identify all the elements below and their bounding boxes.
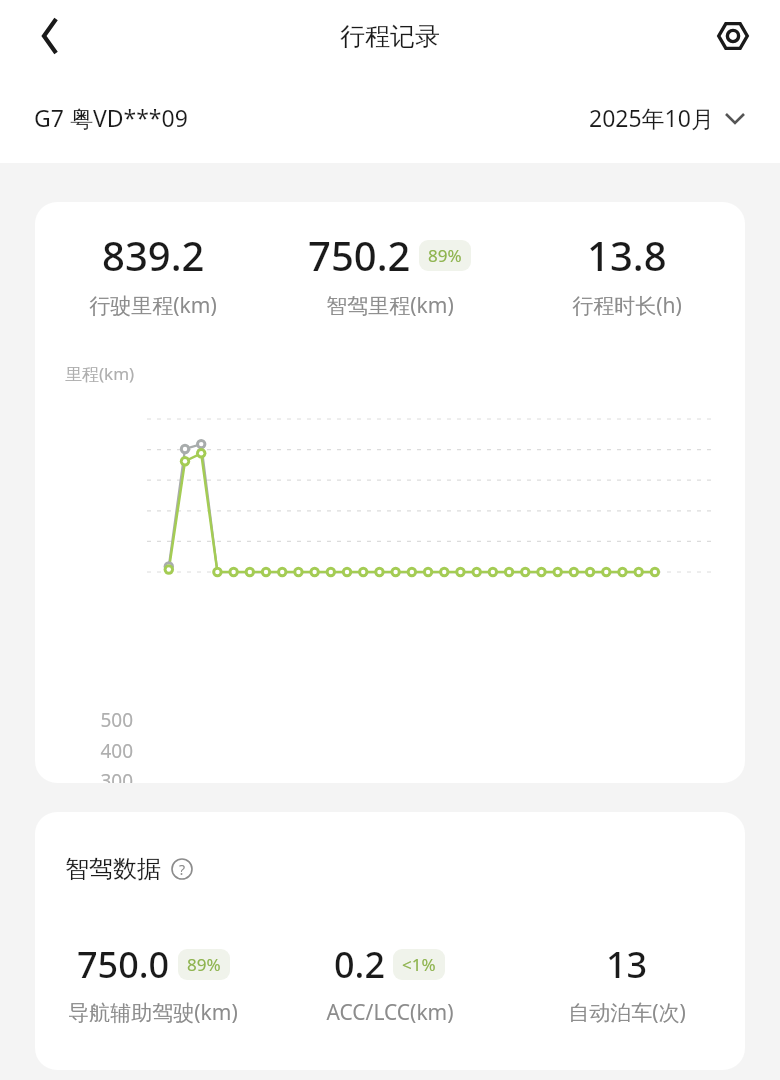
staticText: 500	[75, 707, 133, 733]
staticText: 0.2	[334, 940, 385, 989]
staticText: 400	[75, 738, 133, 764]
button[interactable]: 750.2	[271, 228, 508, 320]
staticText: 导航辅助驾驶(km)	[68, 998, 238, 1027]
staticText: 智驾里程(km)	[326, 291, 454, 320]
button[interactable]: 13.8	[508, 228, 745, 320]
button[interactable]: Settings	[710, 13, 756, 59]
button[interactable]: 750.0	[35, 940, 271, 1027]
staticText: ACC/LCC(km)	[326, 998, 454, 1027]
button[interactable]: 2025年10月	[589, 96, 746, 139]
staticText: 智驾数据	[65, 854, 161, 884]
staticText: 750.0	[77, 940, 170, 989]
staticText: 里程(km)	[65, 362, 135, 385]
staticText: 89%	[187, 953, 221, 976]
button[interactable]: 0.2	[271, 940, 508, 1027]
staticText: 2025年10月	[589, 102, 714, 133]
button[interactable]: 13	[508, 940, 745, 1027]
staticText: <1%	[402, 953, 436, 976]
staticText: 行程时长(h)	[572, 291, 682, 320]
staticText: 13	[606, 940, 648, 989]
staticText: 行程记录	[340, 21, 440, 52]
staticText: 13.8	[587, 228, 667, 282]
button[interactable]: 839.2	[35, 202, 745, 783]
button[interactable]: 839.2	[35, 228, 271, 320]
staticText: 行驶里程(km)	[89, 291, 217, 320]
staticText: 750.2	[308, 228, 411, 282]
staticText: G7 粤VD***09	[34, 102, 188, 133]
staticText: ?	[179, 860, 186, 879]
staticText: 839.2	[102, 228, 205, 282]
staticText: 自动泊车(次)	[568, 998, 686, 1027]
button[interactable]: Help	[169, 856, 195, 882]
button[interactable]: 智驾数据	[35, 812, 745, 1070]
button[interactable]: Back	[24, 10, 76, 62]
staticText: 300	[75, 768, 133, 783]
staticText: 89%	[428, 244, 462, 267]
